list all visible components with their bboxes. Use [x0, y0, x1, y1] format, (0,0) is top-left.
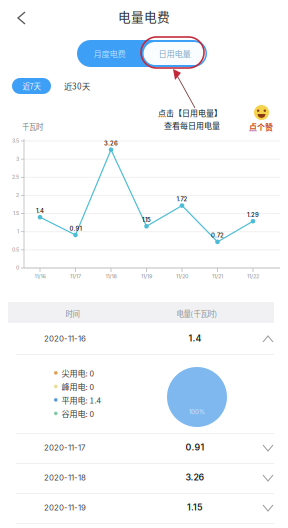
staticText: 1: [17, 228, 19, 234]
staticText: 1.5: [13, 210, 19, 216]
staticText: 近30天: [64, 80, 90, 92]
button[interactable]: 2020-11-17: [8, 434, 274, 463]
staticText: 0: [16, 264, 19, 271]
staticText: 1.15: [142, 216, 151, 223]
button[interactable]: 近7天: [12, 78, 51, 94]
staticText: 3: [16, 156, 19, 162]
staticText: 11/19: [141, 273, 152, 280]
staticText: 日用电量: [158, 47, 190, 59]
button[interactable]: 近30天: [64, 78, 90, 94]
staticText: 1.4: [188, 333, 201, 344]
staticText: 1.29: [247, 211, 259, 218]
staticText: 11/18: [105, 273, 116, 280]
button[interactable]: 日用电量: [142, 40, 207, 67]
button[interactable]: 2020-11-18: [8, 464, 274, 493]
staticText: 谷用电: 0: [62, 407, 95, 419]
staticText: 2: [16, 192, 19, 198]
staticText: 尖用电: 0: [62, 367, 95, 379]
staticText: 点击【日用电量】: [158, 107, 222, 119]
staticText: 0.72: [211, 232, 224, 239]
staticText: 近7天: [22, 81, 40, 91]
staticText: 11/22: [247, 273, 259, 280]
staticText: 0.91: [69, 225, 81, 232]
staticText: 0.5: [12, 246, 19, 253]
staticText: 1.15: [187, 502, 203, 513]
staticText: 11/21: [212, 273, 223, 280]
staticText: 千瓦时: [22, 121, 43, 132]
staticText: 月度电费: [93, 47, 125, 59]
staticText: 2020-11-18: [44, 473, 86, 482]
staticText: 电量电费: [118, 7, 170, 25]
staticText: 11/16: [34, 273, 45, 280]
staticText: 0.91: [185, 442, 204, 453]
button[interactable]: 月度电费: [77, 40, 142, 67]
staticText: 点个赞: [249, 121, 273, 133]
staticText: 2020-11-19: [44, 503, 86, 512]
staticText: 11/20: [176, 273, 188, 280]
staticText: 峰用电: 0: [62, 380, 95, 392]
staticText: 电量(千瓦时): [176, 308, 217, 319]
staticText: 11/17: [70, 273, 81, 280]
staticText: 3.5: [12, 137, 19, 144]
staticText: 2020-11-16: [44, 334, 86, 343]
staticText: 100%: [189, 408, 205, 416]
staticText: 1.4: [36, 207, 44, 214]
button[interactable]: 2020-11-16: [8, 325, 274, 354]
staticText: 2020-11-17: [44, 443, 85, 452]
button[interactable]: Back: [0, 5, 37, 31]
staticText: 查看每日用电量: [164, 120, 220, 131]
staticText: 2.5: [12, 174, 19, 180]
staticText: 时间: [65, 308, 79, 319]
staticText: 平用电: 1.4: [62, 394, 102, 406]
staticText: 3.26: [185, 472, 204, 483]
staticText: 3.26: [104, 140, 118, 147]
staticText: 1.72: [176, 196, 187, 203]
button[interactable]: 2020-11-19: [8, 494, 274, 523]
